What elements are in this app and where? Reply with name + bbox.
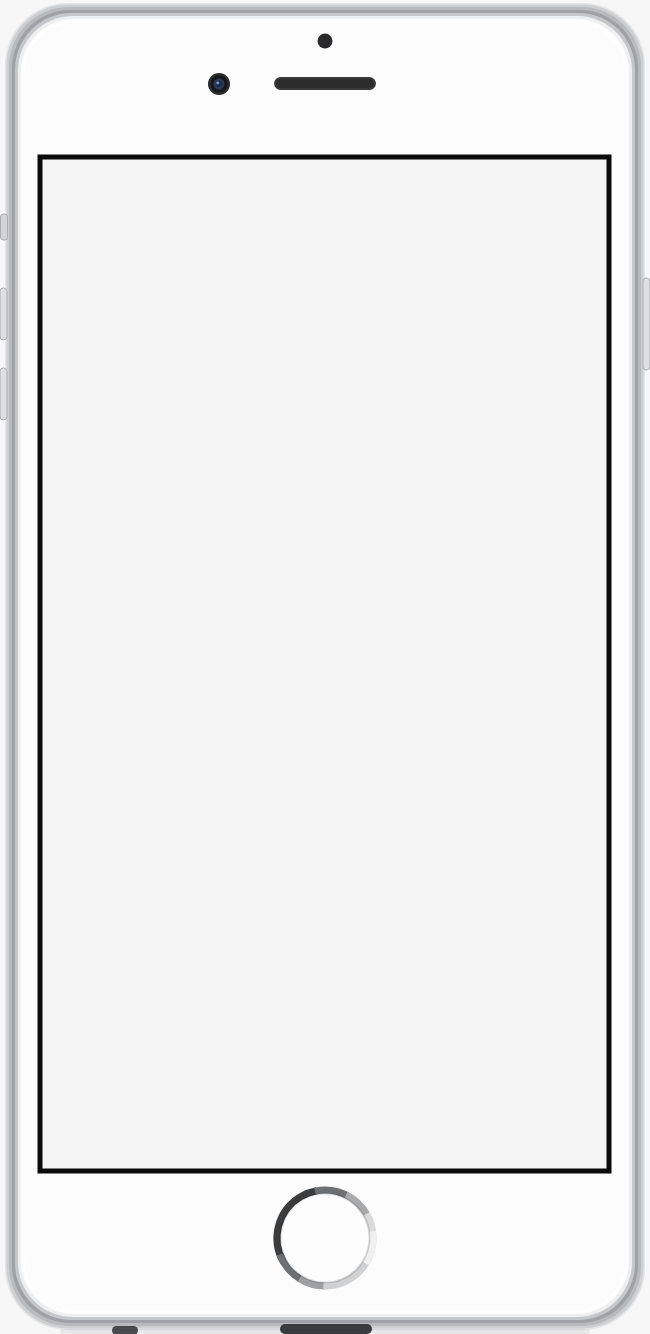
- button[interactable]: White smartphone device mockup: [0, 0, 650, 1334]
